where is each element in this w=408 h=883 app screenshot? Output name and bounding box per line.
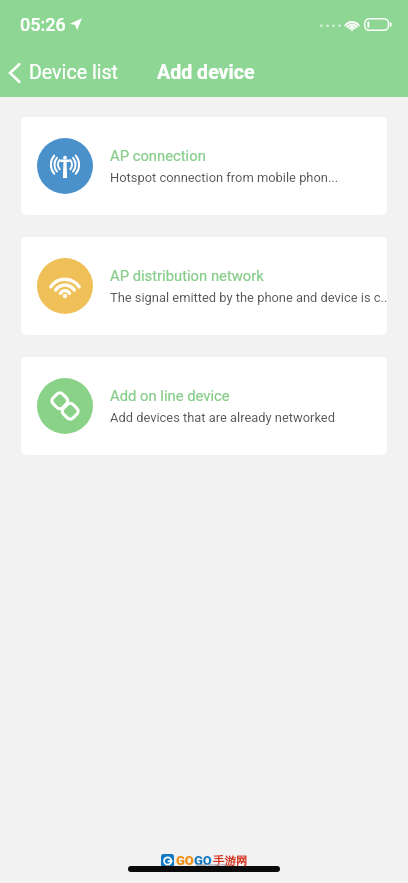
staticText: Hotspot connection from mobile phon... [110,170,339,185]
staticText: The signal emitted by the phone and devi… [110,290,387,305]
staticText: Add on line device [110,387,230,404]
staticText: WWW.GOGO.CN [196,863,227,868]
staticText: 05:26 [20,14,66,35]
button[interactable]: AP connection [21,117,387,215]
button[interactable]: AP distribution network [21,237,387,335]
staticText: GO [194,853,212,868]
staticText: Device list [29,61,118,84]
staticText: Add device [157,61,255,84]
button[interactable]: Back [0,55,122,90]
staticText: Add devices that are already networked [110,410,335,425]
staticText: 手游网 [213,854,248,868]
staticText: AP distribution network [110,267,264,284]
staticText: AP connection [110,147,206,164]
button[interactable]: Add on line device [21,357,387,455]
other: Back [7,62,22,84]
staticText: GO [176,853,194,868]
